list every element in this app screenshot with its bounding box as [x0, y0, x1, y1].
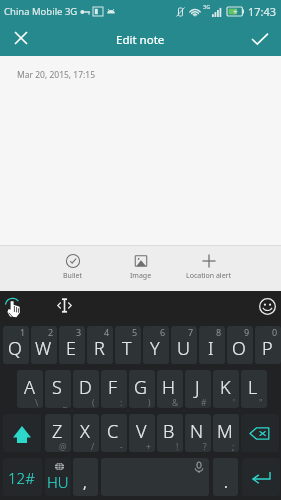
button[interactable]: Backspace: [241, 414, 279, 452]
button[interactable]: M: [213, 414, 239, 452]
button[interactable]: Z: [45, 414, 71, 452]
staticText: Y: [150, 336, 160, 361]
staticText: Edit note: [116, 32, 165, 48]
staticText: 1: [20, 326, 26, 338]
staticText: W: [35, 336, 52, 361]
button[interactable]: X: [73, 414, 99, 452]
staticText: &: [172, 397, 179, 408]
staticText: X: [80, 419, 90, 444]
staticText: +: [146, 441, 151, 452]
staticText: U: [177, 336, 190, 361]
staticText: -: [120, 441, 123, 452]
button[interactable]: Close: [5, 22, 37, 54]
button[interactable]: Emoji: [259, 298, 276, 315]
button[interactable]: Enter: [242, 458, 280, 496]
staticText: ,: [83, 473, 87, 492]
staticText: E: [66, 336, 76, 361]
button[interactable]: Change language: [45, 458, 71, 496]
button[interactable]: G: [129, 370, 155, 408]
staticText: _: [63, 397, 67, 408]
button[interactable]: D: [73, 370, 99, 408]
staticText: C: [107, 419, 119, 444]
button[interactable]: U: [171, 326, 197, 364]
button[interactable]: Bullet: [32, 245, 112, 291]
staticText: ": [259, 397, 263, 408]
button[interactable]: L: [241, 370, 267, 408]
staticText: 5: [132, 326, 138, 338]
staticText: .: [224, 473, 228, 492]
button[interactable]: H: [157, 370, 183, 408]
staticText: S: [52, 375, 62, 400]
staticText: 7: [188, 326, 194, 338]
staticText: 3G: [203, 3, 211, 10]
staticText: 6: [160, 326, 166, 338]
button[interactable]: O: [227, 326, 253, 364]
staticText: !: [176, 441, 179, 452]
staticText: ;: [232, 441, 235, 452]
staticText: Bullet: [63, 271, 82, 281]
button[interactable]: F: [101, 370, 127, 408]
button[interactable]: I: [199, 326, 225, 364]
button[interactable]: C: [101, 414, 127, 452]
button[interactable]: N: [185, 414, 211, 452]
staticText: N: [190, 419, 204, 444]
staticText: \: [35, 397, 39, 408]
staticText: Mar 20, 2015, 17:15: [17, 69, 96, 81]
staticText: F: [108, 375, 118, 400]
button[interactable]: B: [157, 414, 183, 452]
staticText: A: [24, 375, 35, 400]
button[interactable]: Y: [143, 326, 169, 364]
button[interactable]: Image: [101, 245, 181, 291]
staticText: J: [195, 375, 200, 400]
button[interactable]: P: [255, 326, 281, 364]
staticText: ': [233, 397, 235, 408]
staticText: Image: [130, 271, 152, 281]
staticText: R: [94, 336, 105, 361]
button[interactable]: ,: [73, 458, 98, 496]
button[interactable]: V: [129, 414, 155, 452]
button[interactable]: J: [185, 370, 211, 408]
staticText: Z: [52, 419, 63, 444]
staticText: 2: [48, 326, 54, 338]
button[interactable]: T: [115, 326, 141, 364]
staticText: 8: [216, 326, 222, 338]
button[interactable]: Space: [101, 458, 209, 496]
button[interactable]: K: [213, 370, 239, 408]
button[interactable]: S: [45, 370, 71, 408]
staticText: K: [220, 375, 231, 400]
staticText: H: [162, 375, 176, 400]
staticText: P: [262, 336, 273, 361]
staticText: :: [120, 397, 123, 408]
staticText: I: [208, 336, 214, 361]
button[interactable]: R: [87, 326, 113, 364]
staticText: T: [122, 336, 132, 361]
staticText: D: [79, 375, 92, 400]
button[interactable]: E: [59, 326, 85, 364]
staticText: L: [248, 375, 258, 400]
button[interactable]: Shift: [3, 414, 41, 452]
staticText: China Mobile 3G: [4, 5, 78, 18]
staticText: /: [91, 441, 95, 452]
staticText: M: [217, 419, 233, 444]
staticText: 12#: [8, 468, 35, 488]
button[interactable]: Q: [3, 326, 29, 364]
staticText: (: [92, 397, 95, 408]
button[interactable]: Save: [244, 23, 276, 55]
staticText: V: [136, 419, 147, 444]
staticText: @: [59, 441, 67, 452]
button[interactable]: A: [17, 370, 43, 408]
staticText: #: [201, 397, 207, 408]
button[interactable]: Numbers and symbols: [3, 458, 42, 496]
button[interactable]: Location alert: [169, 245, 249, 291]
staticText: Q: [8, 336, 22, 361]
staticText: ?: [203, 441, 207, 452]
button[interactable]: Handwriting: [4, 298, 24, 318]
staticText: Location alert: [186, 271, 232, 281]
button[interactable]: .: [213, 458, 238, 496]
staticText: 9: [244, 326, 250, 338]
staticText: 0: [272, 326, 278, 338]
staticText: O: [232, 336, 246, 361]
button[interactable]: W: [31, 326, 57, 364]
button[interactable]: Move cursor: [57, 298, 72, 313]
staticText: HU: [47, 472, 69, 492]
